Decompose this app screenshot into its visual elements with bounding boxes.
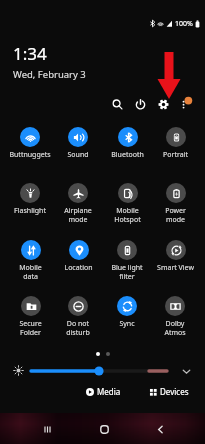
button[interactable]: Blue light filter bbox=[103, 236, 151, 282]
staticText: Devices bbox=[160, 386, 189, 397]
staticText: Blue light filter bbox=[111, 263, 143, 281]
staticText: Sync bbox=[119, 319, 135, 329]
staticText: Airplane mode bbox=[64, 206, 92, 224]
staticText: Wed, February 3 bbox=[13, 68, 86, 81]
staticText: Mobile Hotspot bbox=[114, 206, 141, 224]
button[interactable]: Devices bbox=[143, 384, 195, 399]
button[interactable]: Mobile Hotspot bbox=[103, 179, 151, 225]
staticText: Flashlight bbox=[14, 206, 46, 216]
staticText: Portrait bbox=[163, 150, 188, 160]
button[interactable]: Do not disturb bbox=[54, 292, 102, 338]
button[interactable]: Brightness bbox=[12, 364, 25, 377]
staticText: Smart View bbox=[157, 263, 194, 273]
button[interactable]: Mobile data bbox=[6, 236, 54, 282]
button[interactable]: Dolby Atmos bbox=[151, 292, 199, 338]
staticText: Media bbox=[97, 386, 121, 397]
button[interactable]: Recents bbox=[34, 416, 60, 442]
staticText: 1:34 bbox=[13, 42, 47, 65]
button[interactable]: Secure Folder bbox=[6, 292, 54, 338]
staticText: Power mode bbox=[165, 206, 186, 224]
button[interactable]: Sync bbox=[103, 292, 151, 338]
staticText: Mobile data bbox=[19, 263, 42, 281]
staticText: Buttnuggets bbox=[9, 150, 51, 160]
button[interactable]: Media bbox=[80, 384, 127, 399]
button[interactable]: Home bbox=[91, 416, 117, 442]
button[interactable]: Bluetooth bbox=[103, 123, 151, 169]
button[interactable]: Flashlight bbox=[6, 179, 54, 225]
staticText: Secure Folder bbox=[19, 319, 42, 337]
staticText: Bluetooth bbox=[111, 150, 144, 160]
button[interactable]: Search bbox=[108, 95, 127, 114]
staticText: 100% bbox=[175, 19, 193, 28]
button[interactable]: Settings bbox=[154, 95, 173, 114]
button[interactable]: Location bbox=[54, 236, 102, 282]
button[interactable]: Power mode bbox=[151, 179, 199, 225]
button[interactable]: Airplane mode bbox=[54, 179, 102, 225]
button[interactable]: Buttnuggets bbox=[6, 123, 54, 169]
staticText: Sound bbox=[67, 150, 89, 160]
staticText: Do not disturb bbox=[66, 319, 90, 337]
button[interactable]: Back bbox=[147, 416, 173, 442]
button[interactable]: Expand bbox=[179, 364, 193, 378]
staticText: Location bbox=[64, 263, 93, 273]
button[interactable]: Sound bbox=[54, 123, 102, 169]
staticText: Dolby Atmos bbox=[164, 319, 186, 337]
button[interactable]: Smart View bbox=[151, 236, 199, 282]
button[interactable]: Power bbox=[131, 95, 150, 114]
button[interactable]: Portrait bbox=[151, 123, 199, 169]
button[interactable]: More options bbox=[177, 96, 194, 113]
